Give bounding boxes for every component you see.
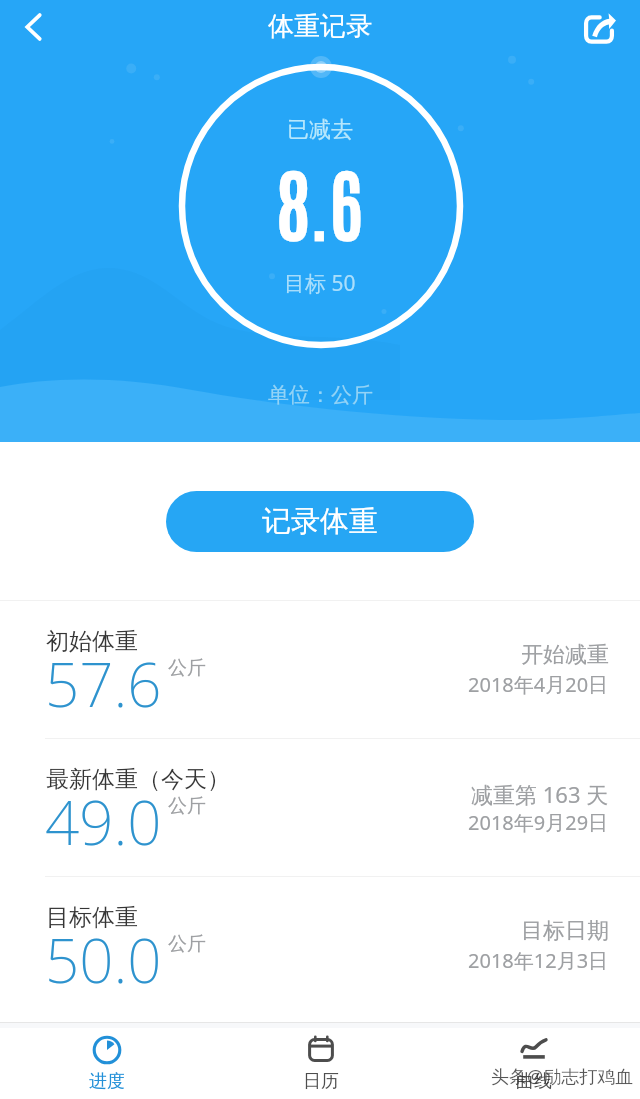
staticText: 头条@励志打鸡血 [491, 1064, 634, 1089]
button[interactable]: 初始体重 [0, 601, 640, 739]
staticText: 公斤 [168, 794, 206, 818]
staticText: 最新体重（今天） [46, 765, 230, 794]
staticText: 体重记录 [268, 10, 372, 43]
staticText: 50.0 [45, 919, 162, 1001]
staticText: 49.0 [45, 781, 162, 863]
button[interactable]: 进度 [0, 1028, 214, 1099]
staticText: 目标日期 [521, 917, 609, 945]
button[interactable]: 曲线 [427, 1028, 640, 1099]
button[interactable]: 目标体重 [0, 877, 640, 1015]
button[interactable]: Back [0, 0, 58, 58]
staticText: 2018年4月20日 [468, 671, 609, 698]
staticText: 8.6 [277, 150, 363, 251]
button[interactable]: 最新体重（今天） [0, 739, 640, 877]
staticText: 进度 [89, 1070, 125, 1093]
staticText: 曲线 [516, 1070, 552, 1093]
button[interactable]: 日历 [214, 1028, 427, 1099]
staticText: 目标 50 [284, 269, 356, 298]
staticText: 日历 [303, 1070, 339, 1093]
staticText: 2018年9月29日 [468, 809, 609, 836]
staticText: 单位：公斤 [268, 382, 373, 408]
staticText: 开始减重 [521, 641, 609, 669]
staticText: 减重第 163 天 [471, 779, 609, 809]
button[interactable]: Share [570, 0, 628, 58]
staticText: 公斤 [168, 656, 206, 680]
staticText: 57.6 [45, 643, 162, 725]
button[interactable]: 记录体重 [166, 491, 474, 552]
staticText: 已减去 [287, 116, 353, 144]
staticText: 初始体重 [46, 627, 138, 656]
staticText: 目标体重 [46, 903, 138, 932]
staticText: 记录体重 [262, 503, 378, 540]
staticText: 2018年12月3日 [468, 947, 609, 974]
staticText: 公斤 [168, 932, 206, 956]
